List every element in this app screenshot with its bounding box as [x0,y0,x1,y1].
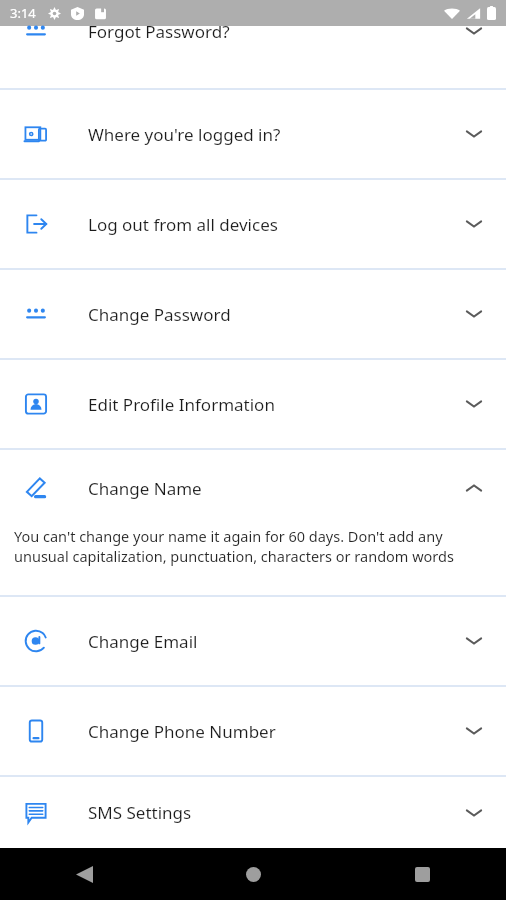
other: Expand [462,212,486,236]
button[interactable]: Recent apps [398,850,446,898]
other: Expand [462,629,486,653]
other: Expand [462,801,486,825]
staticText: 3:14 [10,4,36,22]
other: Expand [462,719,486,743]
staticText: Change Password [88,303,462,326]
button[interactable]: Home [229,850,277,898]
button[interactable]: SMS Settings [0,777,506,848]
button[interactable]: Edit Profile Information [0,360,506,448]
staticText: You can't change your name it again for … [14,526,490,567]
button[interactable]: Change Phone Number [0,687,506,775]
staticText: Edit Profile Information [88,393,462,416]
button[interactable]: Back [60,850,108,898]
staticText: Change Email [88,630,462,653]
other: Expand [462,122,486,146]
staticText: Where you're logged in? [88,123,462,146]
staticText: Change Phone Number [88,720,462,743]
button[interactable]: Where you're logged in? [0,90,506,178]
staticText: Log out from all devices [88,213,462,236]
button[interactable]: Change Name [0,450,506,526]
staticText: Change Name [88,477,462,500]
staticText: Forgot Password? [88,20,462,43]
button[interactable]: Change Email [0,597,506,685]
button[interactable]: Change Password [0,270,506,358]
button[interactable]: Forgot Password? [0,0,506,62]
other: Collapse [462,476,486,500]
other: Expand [462,19,486,43]
other: Expand [462,302,486,326]
button[interactable]: Log out from all devices [0,180,506,268]
other: Expand [462,392,486,416]
staticText: SMS Settings [88,801,462,824]
